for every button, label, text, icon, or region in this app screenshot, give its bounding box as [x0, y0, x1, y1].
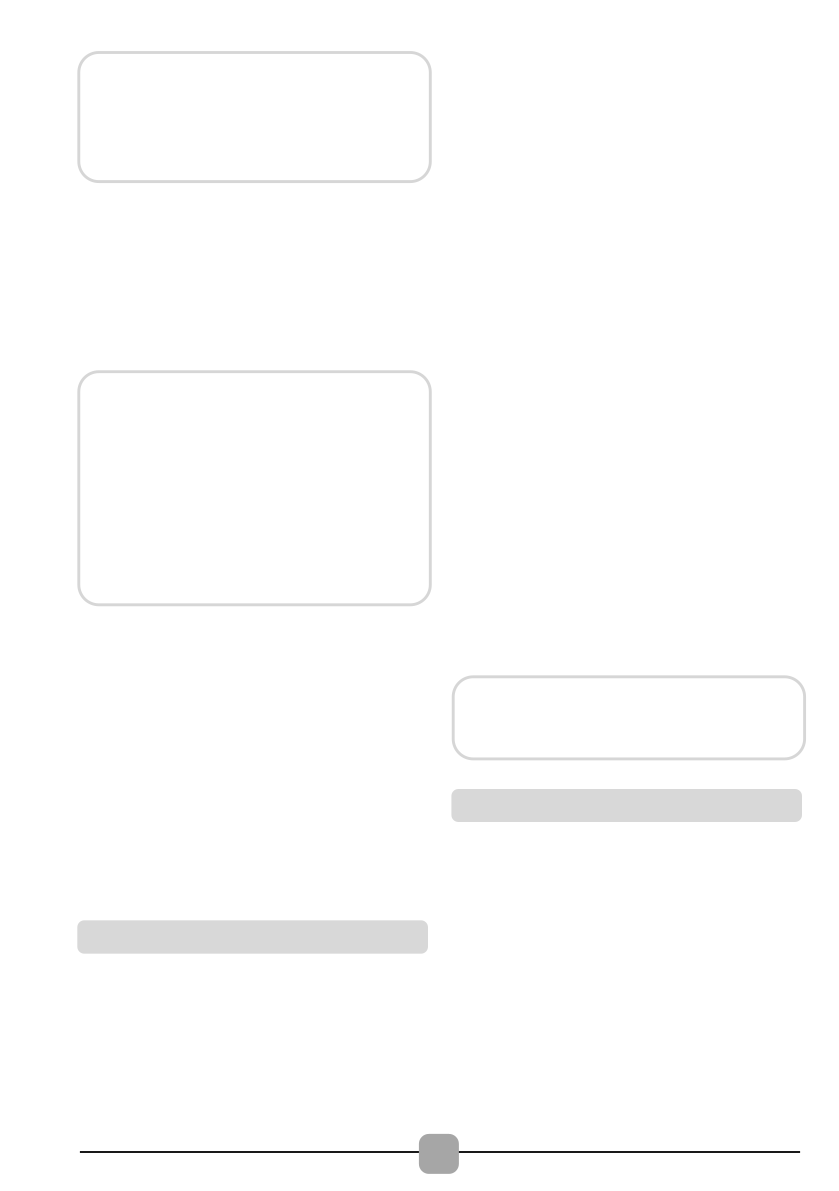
button[interactable]: Card two	[79, 372, 430, 605]
button[interactable]: Slider	[80, 1134, 800, 1174]
button[interactable]: Card three	[453, 677, 805, 759]
button[interactable]: Placeholder bar two	[77, 920, 428, 954]
button[interactable]: Card one	[79, 52, 430, 182]
